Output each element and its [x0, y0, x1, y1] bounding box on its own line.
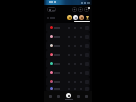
button[interactable]: Brand — [47, 7, 56, 12]
button[interactable] — [46, 23, 90, 32]
button[interactable]: Badge — [73, 15, 78, 20]
button[interactable]: Alerts — [74, 91, 82, 102]
button[interactable]: Trophy — [85, 15, 90, 20]
button[interactable]: Profile — [84, 7, 89, 12]
button[interactable]: Badge — [67, 15, 72, 20]
button[interactable] — [46, 41, 90, 50]
button[interactable]: Badge — [79, 15, 84, 20]
button[interactable] — [46, 50, 90, 59]
button[interactable]: Messages — [78, 7, 83, 12]
button[interactable]: Explore — [54, 91, 62, 102]
button[interactable] — [46, 32, 90, 41]
button[interactable]: Search — [72, 7, 77, 12]
button[interactable]: Capture — [63, 91, 74, 102]
button[interactable]: Home — [46, 91, 54, 102]
button[interactable]: Account — [82, 91, 90, 102]
button[interactable] — [46, 59, 90, 68]
button[interactable] — [46, 77, 90, 86]
button[interactable] — [46, 68, 90, 77]
button[interactable] — [46, 86, 90, 91]
